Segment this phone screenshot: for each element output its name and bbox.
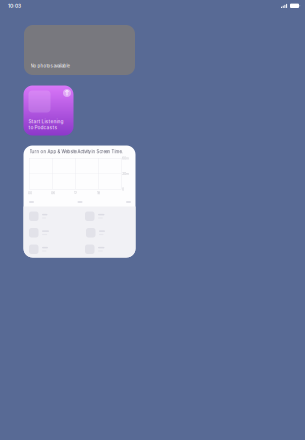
staticText: 10:03 (8, 3, 21, 9)
staticText: No photos available (30, 63, 70, 68)
staticText: 18 (97, 191, 100, 195)
staticText: 00 (28, 191, 32, 195)
staticText: 12 (74, 191, 77, 195)
staticText: Start Listening (28, 118, 63, 124)
staticText: 30m (122, 172, 129, 176)
staticText: 06 (51, 191, 55, 195)
button[interactable]: Turn on App & Website Activity in Screen… (23, 145, 135, 257)
staticText: 60m (122, 156, 129, 160)
button[interactable]: Start Listening (23, 85, 73, 135)
staticText: Turn on App & Website Activity in Screen… (29, 149, 122, 154)
button[interactable]: No photos available (24, 25, 135, 75)
staticText: 0 (122, 187, 124, 191)
staticText: to Podcasts (28, 125, 57, 130)
